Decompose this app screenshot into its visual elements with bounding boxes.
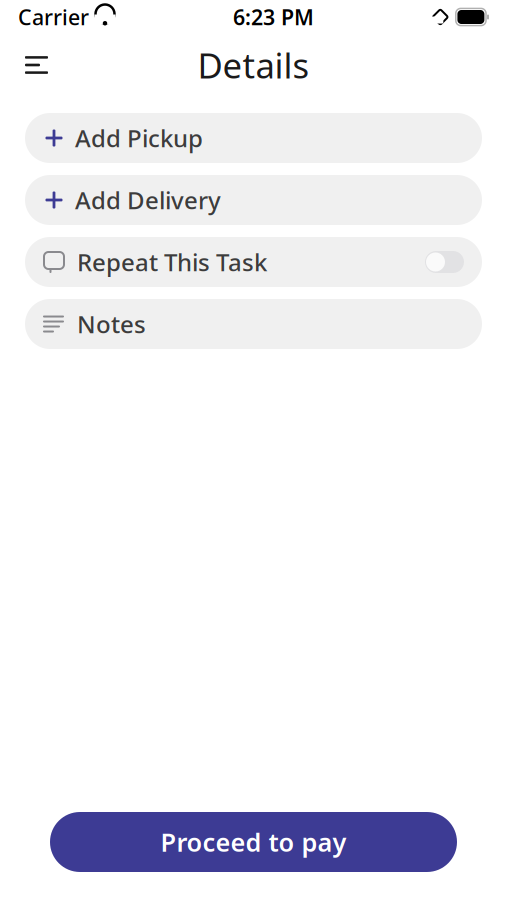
staticText: Details: [197, 42, 309, 88]
staticText: Repeat This Task: [77, 246, 267, 278]
button[interactable]: Repeat This Task: [25, 237, 482, 287]
button[interactable]: Proceed to pay: [50, 812, 457, 872]
staticText: Add Delivery: [75, 184, 221, 216]
button[interactable]: Add Pickup: [25, 113, 482, 163]
button[interactable]: Notes: [25, 299, 482, 349]
staticText: Carrier: [18, 3, 89, 31]
button[interactable]: Add Delivery: [25, 175, 482, 225]
staticText: Proceed to pay: [160, 825, 346, 859]
staticText: Add Pickup: [75, 122, 203, 154]
staticText: 6:23 PM: [233, 3, 314, 31]
button[interactable]: Menu: [0, 43, 69, 87]
staticText: Notes: [77, 308, 146, 340]
